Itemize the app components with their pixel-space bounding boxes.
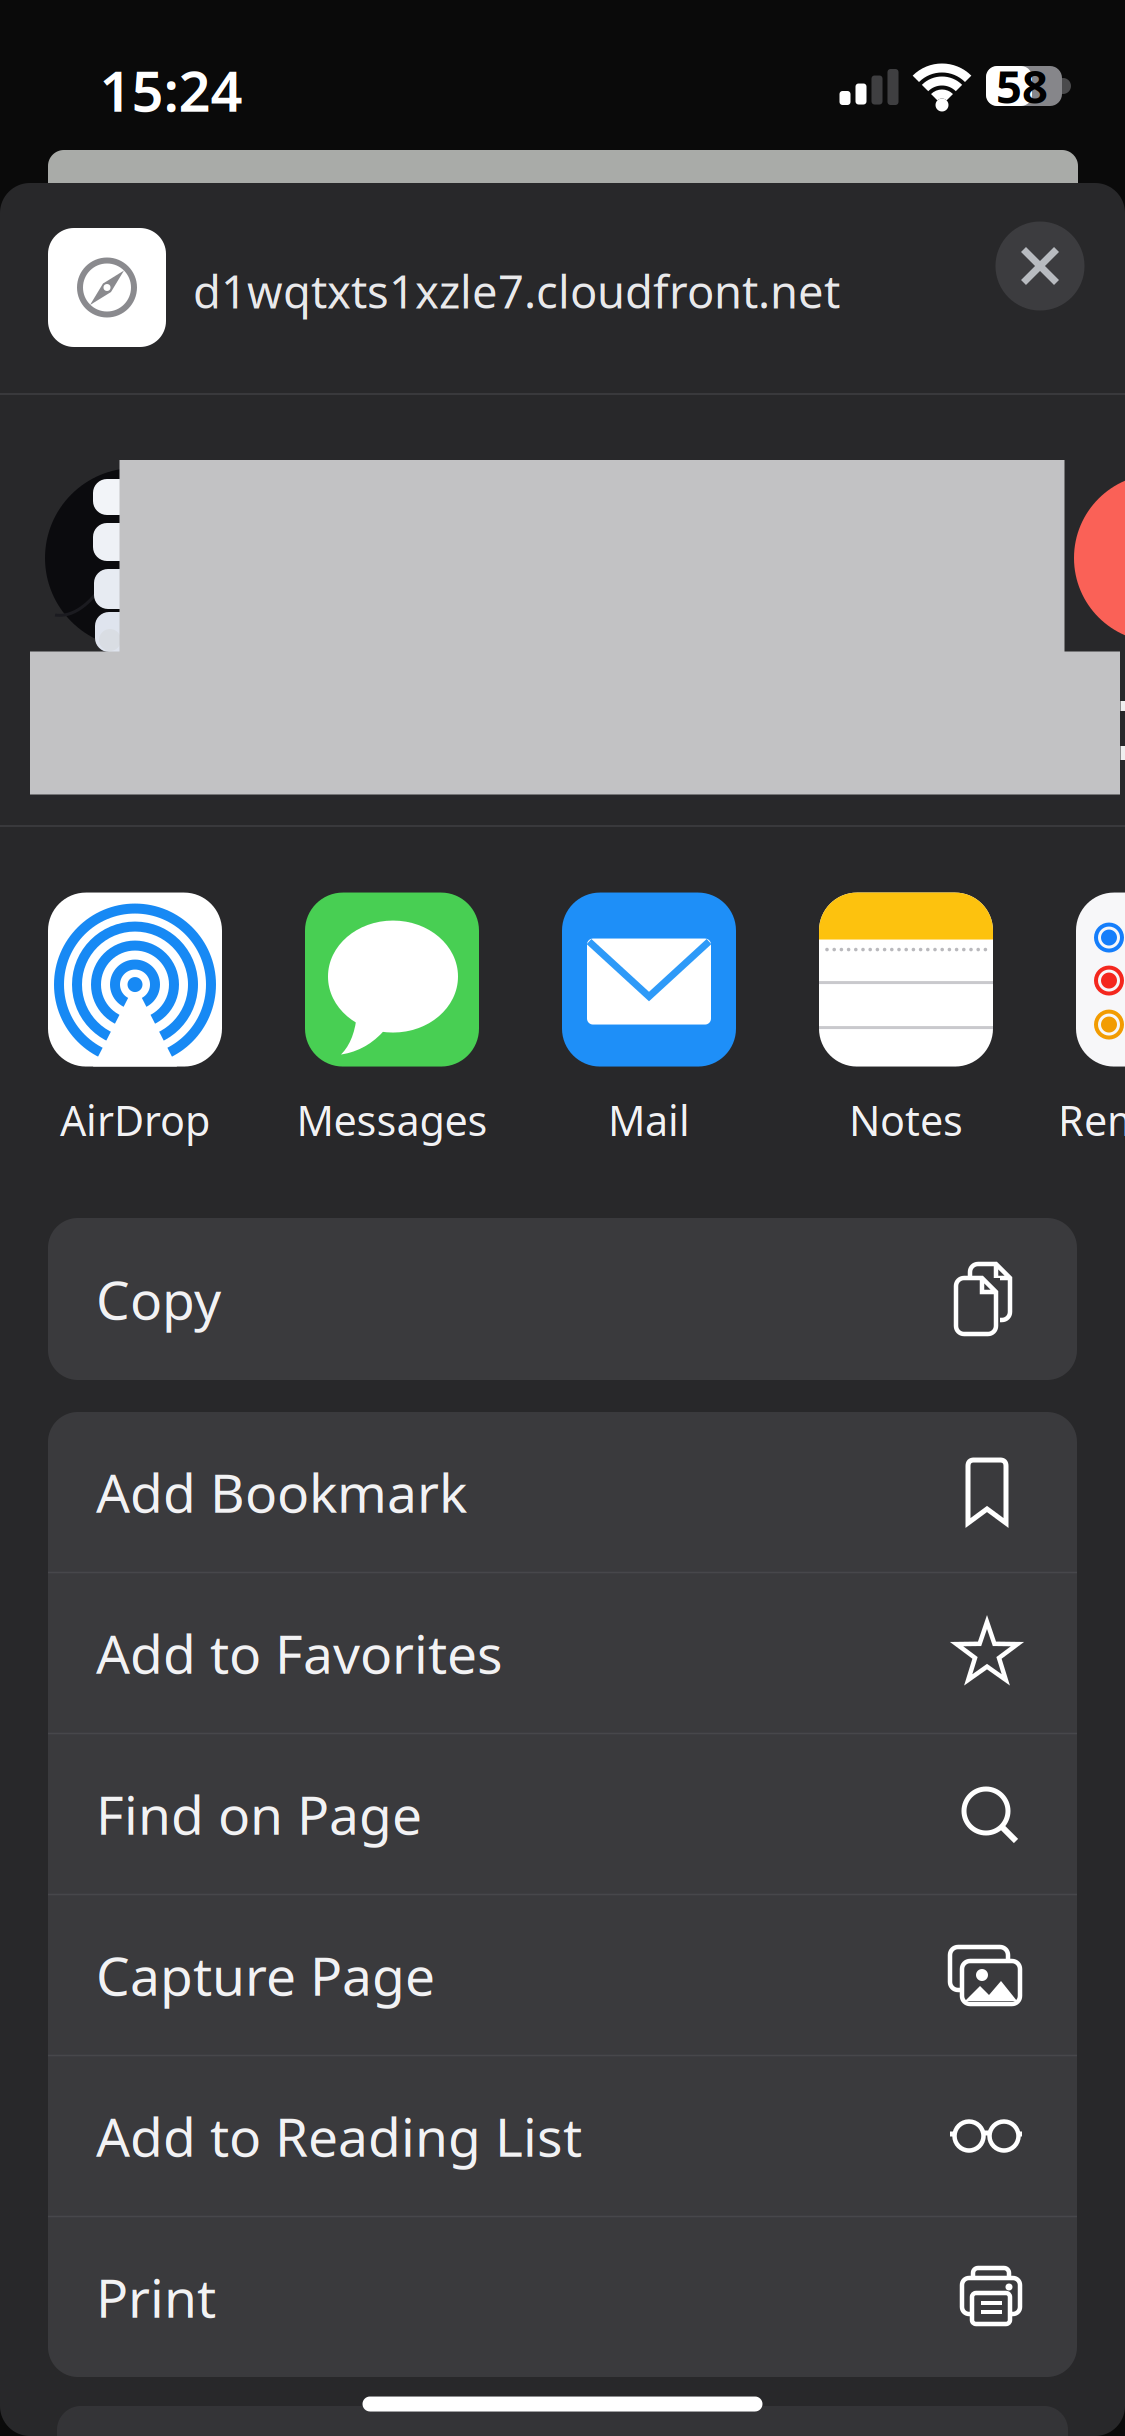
staticText: Capture Page	[96, 1940, 435, 2010]
staticText: Reminders	[1058, 1093, 1125, 1147]
button[interactable]: Reminders	[1058, 893, 1125, 1147]
staticText: Print	[96, 2262, 216, 2332]
staticText: AirDrop	[60, 1093, 210, 1147]
button[interactable]: Add to Favorites	[48, 1573, 1077, 1733]
staticText: Notes	[849, 1093, 963, 1147]
staticText: Add to Reading List	[96, 2101, 582, 2171]
button[interactable]: Messages	[296, 893, 487, 1147]
button[interactable]: Find on Page	[48, 1734, 1077, 1894]
staticText: Find on Page	[96, 1779, 422, 1849]
staticText: Messages	[296, 1093, 487, 1147]
button[interactable]: Print	[48, 2217, 1077, 2377]
staticText: 58	[996, 56, 1048, 116]
staticText: d1wqtxts1xzle7.cloudfront.net	[193, 261, 840, 321]
staticText: Add Bookmark	[96, 1457, 467, 1527]
staticText: Add to Favorites	[96, 1618, 503, 1688]
staticText: Copy	[96, 1264, 221, 1334]
button[interactable]: Add to Reading List	[48, 2056, 1077, 2216]
button[interactable]: Mail	[562, 893, 736, 1147]
button[interactable]: Capture Page	[48, 1895, 1077, 2055]
button[interactable]: AirDrop	[48, 893, 222, 1147]
button[interactable]: Add Bookmark	[48, 1412, 1077, 1572]
staticText: 15:24	[99, 53, 242, 127]
staticText: Mail	[608, 1093, 690, 1147]
button[interactable]	[995, 221, 1084, 310]
button[interactable]: Copy	[48, 1218, 1077, 1380]
button[interactable]: Notes	[819, 893, 993, 1147]
